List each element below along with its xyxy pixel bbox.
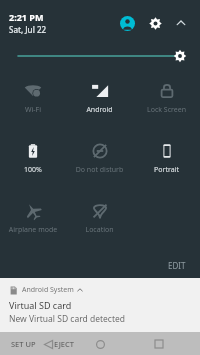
staticText: Location [66, 225, 133, 235]
staticText: Android [66, 105, 133, 115]
staticText: EJECT [54, 339, 74, 349]
button[interactable]: Back [40, 336, 56, 352]
staticText: 2:21 PM [9, 11, 44, 23]
staticText: EDIT [168, 260, 186, 271]
button[interactable]: SET UP [9, 336, 38, 352]
button[interactable]: Home [91, 335, 109, 353]
button[interactable]: Location [66, 192, 133, 252]
staticText: New Virtual SD card detected [9, 313, 126, 325]
staticText: SET UP [11, 339, 36, 349]
button[interactable]: User [115, 11, 139, 35]
staticText: 100% [0, 165, 66, 175]
button[interactable]: Do not disturb [66, 132, 133, 192]
button[interactable]: EJECT [52, 336, 76, 352]
staticText: Do not disturb [66, 165, 133, 175]
staticText: Wi-Fi [0, 105, 66, 115]
staticText: Airplane mode [0, 225, 66, 235]
staticText: Portrait [133, 165, 200, 175]
button[interactable]: EDIT [164, 256, 190, 275]
button[interactable]: Wi-Fi [0, 72, 66, 132]
button[interactable]: Airplane mode [0, 192, 66, 252]
button[interactable]: Lock Screen [133, 72, 200, 132]
button[interactable]: Recents [150, 335, 168, 353]
staticText: Sat, Jul 22 [9, 24, 47, 35]
staticText: Android System [22, 285, 74, 295]
button[interactable]: Portrait [133, 132, 200, 192]
button[interactable]: Collapse [170, 12, 192, 34]
button[interactable]: Brightness [0, 46, 200, 66]
button[interactable]: Android System [9, 285, 83, 295]
staticText: Virtual SD card [9, 299, 72, 311]
staticText: Lock Screen [133, 105, 200, 115]
button[interactable]: Android [66, 72, 133, 132]
button[interactable]: Settings [143, 11, 167, 35]
button[interactable]: 100% [0, 132, 66, 192]
